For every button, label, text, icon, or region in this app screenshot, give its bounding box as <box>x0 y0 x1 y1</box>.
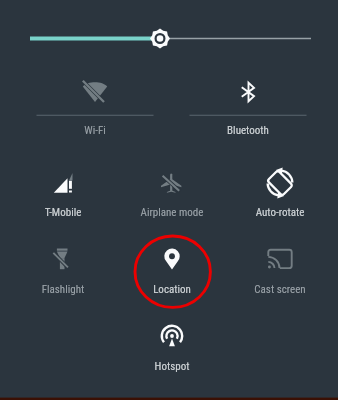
button[interactable]: Airplane mode <box>118 157 226 220</box>
button[interactable]: Wi-Fi <box>30 66 160 138</box>
button[interactable]: Auto-rotate <box>226 157 334 220</box>
button[interactable]: Cast screen <box>226 233 334 297</box>
staticText: Hotspot <box>118 360 226 373</box>
button[interactable]: Bluetooth <box>183 66 313 138</box>
button[interactable]: Location <box>118 233 226 297</box>
staticText: T-Mobile <box>9 206 117 219</box>
staticText: Flashlight <box>9 283 117 296</box>
staticText: Wi-Fi <box>30 124 160 137</box>
button[interactable]: Flashlight <box>9 233 117 297</box>
staticText: Location <box>118 283 226 296</box>
staticText: Bluetooth <box>183 124 313 137</box>
staticText: Cast screen <box>226 283 334 296</box>
button[interactable]: T-Mobile <box>9 157 117 220</box>
staticText: Auto-rotate <box>226 206 334 219</box>
button[interactable]: Hotspot <box>118 310 226 374</box>
staticText: Airplane mode <box>118 206 226 219</box>
